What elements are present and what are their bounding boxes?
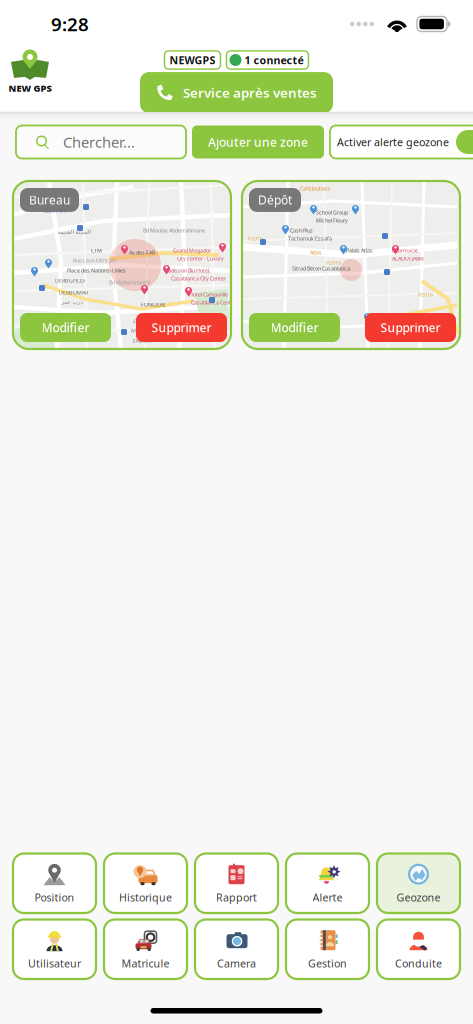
staticText: Bd Moulay Abderrahmane	[143, 227, 205, 234]
staticText: Casablanca City Center	[171, 275, 226, 282]
staticText: Café Jouhara	[300, 185, 330, 192]
staticText: Modifier	[270, 319, 318, 335]
button[interactable]: Activer alerte geozone	[330, 125, 473, 158]
staticText: CTM	[91, 247, 102, 254]
staticText: 9:28	[51, 12, 89, 36]
staticText: ERB OM	[133, 337, 152, 344]
staticText: Chercher...	[63, 132, 135, 152]
button[interactable]: Matricule	[104, 919, 187, 979]
staticText: ALAOUI JABRI	[392, 255, 424, 262]
staticText: Bd Mohammed V	[109, 279, 150, 286]
button[interactable]: Supprimer	[136, 313, 227, 342]
staticText: Rue Léon l'Africain	[73, 257, 116, 264]
staticText: NEW GPS	[8, 82, 51, 94]
staticText: Modifier	[41, 319, 89, 335]
staticText: Dépôt	[258, 192, 292, 208]
staticText: Palais Atlas	[346, 247, 373, 254]
staticText: Alerte	[312, 890, 342, 904]
staticText: Cash Plus	[290, 227, 313, 234]
staticText: Activer alerte geozone	[337, 135, 449, 149]
button[interactable]: Geozone	[377, 853, 460, 913]
staticText: P2016	[248, 235, 263, 242]
staticText: NEWGPS	[169, 53, 215, 67]
staticText: MMERCE	[131, 327, 153, 334]
staticText: Service après ventes	[183, 84, 317, 101]
staticText: Pharmacie	[392, 247, 418, 254]
staticText: Conduite	[395, 956, 442, 970]
button[interactable]: Utilisateur	[13, 919, 96, 979]
button[interactable]: Position	[13, 853, 96, 913]
button[interactable]: Alerte	[286, 853, 369, 913]
staticText: El Ghafla	[272, 319, 293, 326]
staticText: Bureau	[29, 192, 70, 208]
staticText: Rapport	[216, 890, 257, 904]
staticText: Position	[34, 890, 74, 904]
staticText: Casa Port	[43, 207, 66, 214]
staticText: Grand Mogador	[173, 247, 211, 254]
button[interactable]: Ajouter une zone	[192, 125, 324, 158]
button[interactable]: Supprimer	[365, 313, 456, 342]
staticText: P2016	[418, 291, 433, 298]
staticText: City center - Luxury	[177, 255, 224, 262]
staticText: Utilisateur	[28, 956, 81, 970]
staticText: School Group	[316, 209, 348, 216]
staticText: DERB GHLEF	[55, 277, 86, 284]
staticText: Sitrad Béton Casablanca	[292, 265, 350, 272]
staticText: 1 connecté	[244, 53, 303, 67]
staticText: P2016	[326, 259, 341, 266]
staticText: Av. des FAR	[129, 249, 155, 256]
button[interactable]: Camera	[195, 919, 278, 979]
button[interactable]: Service après ventes	[140, 72, 333, 113]
staticText: Tacharouk Essafa	[288, 235, 332, 242]
staticText: Historique	[119, 890, 172, 904]
staticText: Geozone	[396, 890, 440, 904]
staticText: Atlas	[310, 249, 322, 256]
staticText: Ajouter une zone	[208, 134, 308, 150]
button[interactable]: Gestion	[286, 919, 369, 979]
staticText: Hotel Campanile	[189, 291, 228, 298]
button[interactable]: Rapport	[195, 853, 278, 913]
staticText: Casablanca Centre Ville	[191, 299, 246, 306]
staticText: المدينة القديمة	[57, 229, 90, 235]
button[interactable]: Historique	[104, 853, 187, 913]
button[interactable]: Modifier	[249, 313, 340, 342]
staticText: Place des Nations-Unies	[67, 267, 126, 274]
staticText: DERB OMAR	[59, 289, 88, 296]
staticText: درب عمر	[61, 299, 82, 305]
staticText: Place Mohammed V	[63, 315, 111, 322]
staticText: Gestion	[308, 956, 347, 970]
staticText: Michel Fleury	[316, 217, 348, 224]
button[interactable]: Conduite	[377, 919, 460, 979]
button[interactable]: Modifier	[20, 313, 111, 342]
button[interactable]: Chercher...	[16, 125, 186, 158]
staticText: Supprimer	[380, 319, 440, 335]
staticText: Camera	[217, 956, 256, 970]
staticText: Supprimer	[151, 319, 211, 335]
staticText: FONCIERE	[141, 301, 166, 308]
staticText: Radisson Blu Hotel,	[165, 267, 210, 274]
staticText: Matricule	[121, 956, 169, 970]
staticText: ZONE	[133, 317, 147, 324]
